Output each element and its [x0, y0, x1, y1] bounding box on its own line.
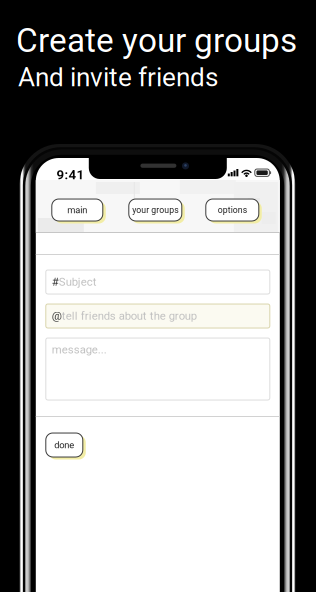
staticText: tell friends about the group — [62, 309, 197, 323]
staticText: done — [54, 439, 74, 450]
button[interactable]: main — [52, 199, 108, 225]
staticText: And invite friends — [18, 62, 218, 93]
staticText: Create your groups — [16, 21, 297, 60]
staticText: @ — [52, 309, 62, 323]
staticText: your groups — [132, 205, 178, 215]
staticText: Subject — [59, 275, 97, 289]
staticText: 9:41 — [57, 167, 85, 183]
staticText: message... — [52, 343, 107, 356]
button[interactable]: done — [46, 433, 88, 461]
button[interactable]: message... — [46, 338, 270, 400]
button[interactable]: # — [46, 270, 270, 294]
staticText: options — [218, 205, 247, 215]
button[interactable]: your groups — [129, 199, 187, 225]
button[interactable]: @ — [46, 304, 270, 328]
staticText: # — [52, 275, 59, 289]
staticText: main — [67, 204, 87, 215]
button[interactable]: options — [206, 199, 264, 225]
